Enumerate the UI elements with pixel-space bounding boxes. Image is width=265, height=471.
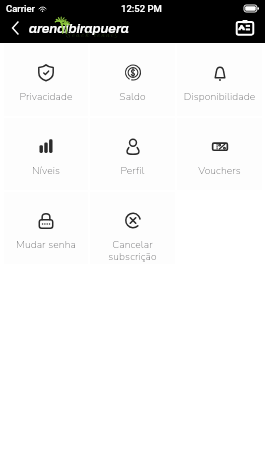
staticText: Privacidade (4, 89, 88, 103)
staticText: Disponibilidade (177, 89, 262, 103)
button[interactable]: Back (8, 18, 23, 37)
button[interactable]: Cancelar subscrição (90, 192, 175, 264)
button[interactable]: Privacidade (4, 44, 88, 116)
staticText: Mudar senha (4, 237, 88, 251)
staticText: arena (29, 21, 66, 36)
staticText: ibirapuera (65, 21, 129, 36)
button[interactable]: Mudar senha (4, 192, 88, 264)
staticText: Níveis (4, 163, 88, 177)
staticText: Beach tennis (65, 31, 119, 41)
staticText: 12:52 PM (121, 3, 162, 14)
staticText: Vouchers (177, 163, 262, 177)
staticText: Perfil (90, 163, 175, 177)
staticText: Saldo (90, 89, 175, 103)
button[interactable]: Perfil (90, 118, 175, 190)
button[interactable]: Saldo (90, 44, 175, 116)
button[interactable]: Vouchers (177, 118, 262, 190)
staticText: Carrier (6, 3, 35, 14)
button[interactable]: Disponibilidade (177, 44, 262, 116)
button[interactable]: Níveis (4, 118, 88, 190)
staticText: Cancelar subscrição (90, 237, 175, 264)
button[interactable]: Membership card (233, 17, 256, 37)
